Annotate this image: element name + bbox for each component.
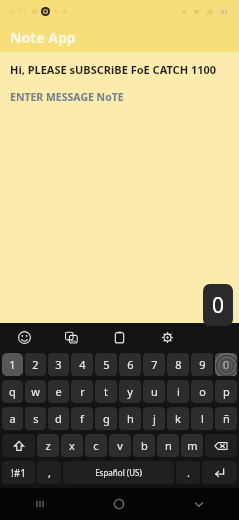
button[interactable]: Translate bbox=[60, 326, 82, 348]
staticText: e bbox=[55, 384, 62, 399]
button[interactable]: i bbox=[167, 380, 189, 403]
staticText: 0 bbox=[212, 291, 225, 320]
button[interactable]: 1 bbox=[2, 353, 23, 376]
button[interactable]: 6 bbox=[119, 353, 141, 376]
staticText: 1 bbox=[9, 357, 16, 372]
button[interactable]: w bbox=[25, 380, 46, 403]
button[interactable]: r bbox=[71, 380, 93, 403]
button[interactable]: Hide keyboard bbox=[159, 488, 239, 520]
button[interactable]: 4 bbox=[71, 353, 93, 376]
button[interactable]: ENTER MESSAGE NoTE bbox=[10, 90, 124, 104]
staticText: u bbox=[151, 384, 158, 399]
button[interactable]: f bbox=[71, 407, 93, 430]
staticText: t bbox=[104, 384, 108, 399]
staticText: 6 bbox=[127, 357, 134, 372]
button[interactable]: ñ bbox=[215, 407, 237, 430]
button[interactable]: Hi, PLEASE sUBSCRiBE FoE CATCH 1100 bbox=[10, 62, 217, 77]
button[interactable]: n bbox=[157, 434, 179, 457]
staticText: z bbox=[45, 438, 51, 453]
button[interactable]: 9 bbox=[191, 353, 213, 376]
staticText: ñ bbox=[223, 411, 230, 426]
button[interactable]: q bbox=[2, 380, 23, 403]
button[interactable]: 7 bbox=[143, 353, 165, 376]
button[interactable]: Español (US) bbox=[63, 461, 174, 484]
button[interactable]: Clipboard bbox=[108, 326, 130, 348]
staticText: 3 bbox=[55, 357, 62, 372]
button[interactable]: y bbox=[119, 380, 141, 403]
button[interactable]: a bbox=[2, 407, 23, 430]
staticText: 7 bbox=[151, 357, 158, 372]
staticText: 9 bbox=[199, 357, 206, 372]
staticText: 8 bbox=[175, 357, 182, 372]
staticText: 4 bbox=[79, 357, 86, 372]
button[interactable]: Enter bbox=[202, 461, 237, 484]
button[interactable]: z bbox=[37, 434, 59, 457]
button[interactable]: Backspace bbox=[205, 434, 237, 457]
button[interactable]: u bbox=[143, 380, 165, 403]
button[interactable]: Home bbox=[79, 488, 159, 520]
button[interactable]: Keyboard settings bbox=[156, 326, 178, 348]
staticText: Español (US) bbox=[95, 467, 142, 478]
staticText: 51 bbox=[221, 8, 228, 16]
staticText: l bbox=[201, 411, 204, 426]
button[interactable]: . bbox=[176, 461, 200, 484]
button[interactable]: 3 bbox=[48, 353, 69, 376]
button[interactable]: Emoji bbox=[13, 326, 35, 348]
staticText: m bbox=[187, 438, 198, 453]
staticText: y bbox=[127, 384, 133, 399]
staticText: !#1 bbox=[11, 466, 26, 480]
staticText: 0 bbox=[223, 357, 230, 372]
button[interactable]: c bbox=[85, 434, 107, 457]
button[interactable]: d bbox=[48, 407, 69, 430]
staticText: a bbox=[9, 411, 16, 426]
staticText: v bbox=[117, 438, 123, 453]
staticText: i bbox=[177, 384, 180, 399]
button[interactable]: Shift bbox=[2, 434, 35, 457]
button[interactable]: t bbox=[95, 380, 117, 403]
button[interactable]: , bbox=[37, 461, 61, 484]
button[interactable]: !#1 bbox=[2, 461, 35, 484]
button[interactable]: p bbox=[215, 380, 237, 403]
staticText: h bbox=[127, 411, 134, 426]
staticText: p bbox=[223, 384, 230, 399]
staticText: s bbox=[33, 411, 39, 426]
button[interactable]: l bbox=[191, 407, 213, 430]
button[interactable]: x bbox=[61, 434, 83, 457]
button[interactable]: 0 bbox=[215, 353, 237, 376]
button[interactable]: j bbox=[143, 407, 165, 430]
staticText: r bbox=[80, 384, 85, 399]
staticText: j bbox=[153, 411, 156, 426]
button[interactable]: b bbox=[133, 434, 155, 457]
button[interactable]: 8 bbox=[167, 353, 189, 376]
staticText: b bbox=[141, 438, 148, 453]
staticText: d bbox=[55, 411, 62, 426]
staticText: g bbox=[103, 411, 110, 426]
staticText: 2 bbox=[32, 357, 39, 372]
button[interactable]: k bbox=[167, 407, 189, 430]
button[interactable]: h bbox=[119, 407, 141, 430]
button[interactable]: 2 bbox=[25, 353, 46, 376]
button[interactable]: m bbox=[181, 434, 203, 457]
button[interactable]: e bbox=[48, 380, 69, 403]
staticText: . bbox=[187, 465, 190, 480]
button[interactable]: Recents bbox=[0, 488, 79, 520]
staticText: 4:01 bbox=[9, 5, 27, 17]
button[interactable]: o bbox=[191, 380, 213, 403]
staticText: q bbox=[9, 384, 16, 399]
button[interactable]: 5 bbox=[95, 353, 117, 376]
staticText: 5 bbox=[103, 357, 110, 372]
button[interactable]: v bbox=[109, 434, 131, 457]
staticText: , bbox=[48, 465, 51, 480]
staticText: w bbox=[31, 384, 40, 399]
staticText: k bbox=[175, 411, 181, 426]
button[interactable]: g bbox=[95, 407, 117, 430]
staticText: c bbox=[93, 438, 99, 453]
staticText: f bbox=[80, 411, 84, 426]
staticText: x bbox=[69, 438, 75, 453]
button[interactable]: s bbox=[25, 407, 46, 430]
staticText: o bbox=[199, 384, 206, 399]
staticText: Note App bbox=[10, 28, 76, 47]
staticText: n bbox=[165, 438, 172, 453]
